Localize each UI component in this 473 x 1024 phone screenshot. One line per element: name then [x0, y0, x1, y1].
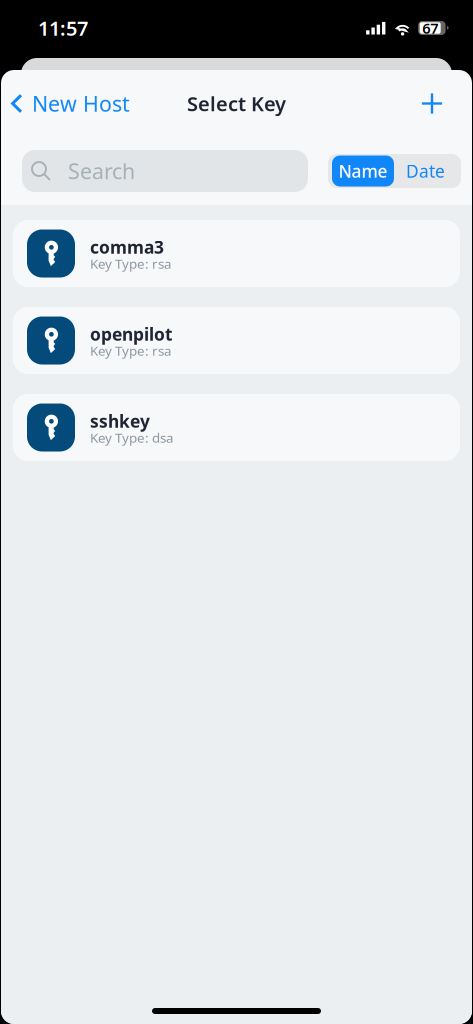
- staticText: 11:57: [38, 15, 88, 41]
- button[interactable]: New Host: [3, 81, 140, 125]
- button[interactable]: openpilot: [13, 307, 460, 374]
- button[interactable]: Name: [332, 155, 394, 186]
- button[interactable]: sshkey: [13, 394, 460, 461]
- staticText: 67: [422, 18, 438, 38]
- staticText: sshkey: [90, 410, 150, 433]
- staticText: Select Key: [187, 90, 286, 117]
- staticText: New Host: [32, 89, 130, 118]
- staticText: Name: [338, 159, 387, 182]
- staticText: openpilot: [90, 323, 173, 346]
- button[interactable]: Add key: [410, 81, 454, 125]
- staticText: Search: [68, 157, 135, 185]
- button[interactable]: comma3: [13, 220, 460, 287]
- staticText: Key Type: dsa: [90, 429, 173, 446]
- staticText: comma3: [90, 236, 164, 259]
- staticText: Key Type: rsa: [90, 255, 171, 272]
- staticText: Date: [406, 159, 445, 182]
- button[interactable]: Date: [394, 155, 457, 186]
- staticText: Key Type: rsa: [90, 342, 171, 359]
